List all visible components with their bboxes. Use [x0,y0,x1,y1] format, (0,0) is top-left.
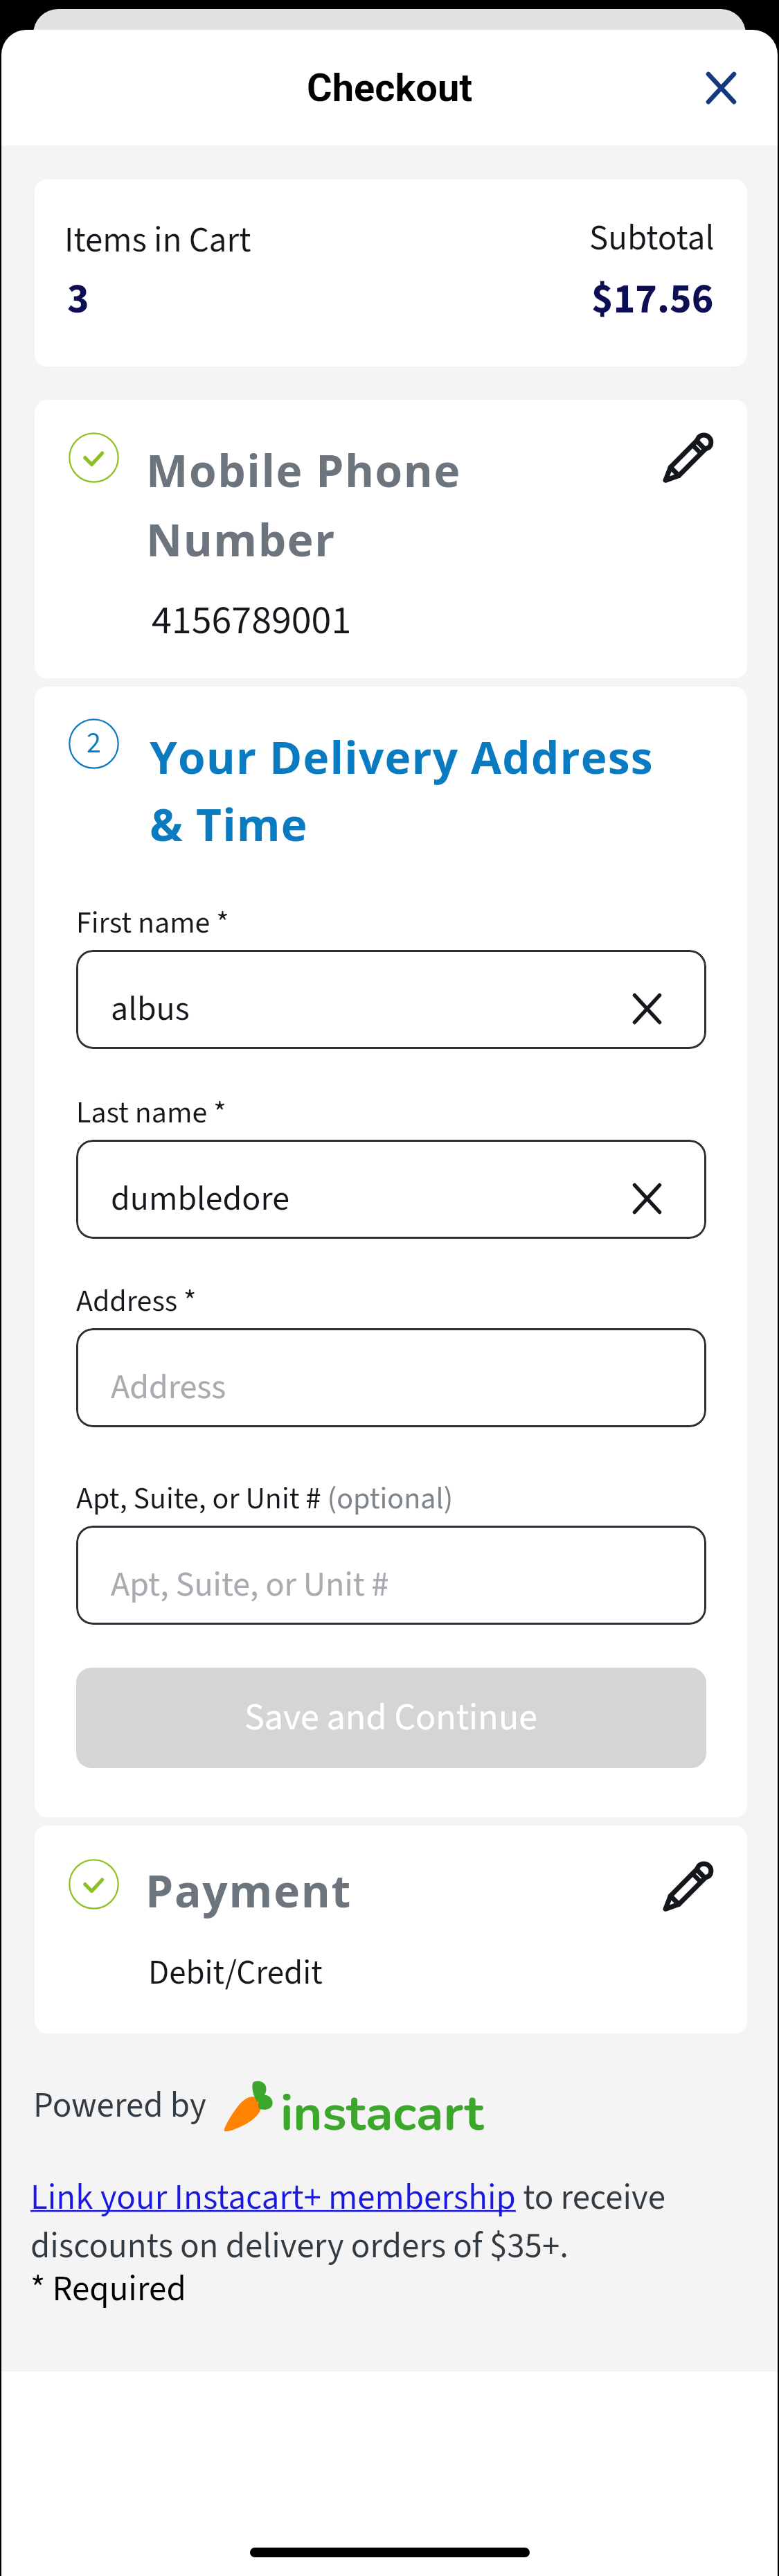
staticText: $17.56 [591,270,714,329]
staticText: Payment [145,1860,352,1921]
staticText: (optional) [321,1477,453,1521]
staticText: Apt, Suite, or Unit # [76,1477,321,1521]
staticText: albus [111,985,190,1034]
staticText: Items in Cart [64,215,251,266]
staticText: Save and Continue [244,1691,538,1745]
staticText: discounts on delivery orders of $35+. [30,2221,569,2272]
button[interactable]: Address [76,1328,706,1427]
button[interactable]: Close [683,50,759,126]
staticText: 4156789001 [152,592,352,650]
staticText: dumbledore [111,1174,290,1224]
staticText: Address [111,1363,226,1412]
staticText: Powered by [33,2081,206,2131]
staticText: Last name * [76,1091,226,1135]
staticText: 2 [87,723,101,764]
staticText: 3 [67,270,89,329]
staticText: Mobile Phone Number [146,440,461,569]
button[interactable]: Link your Instacart+ membership [30,2173,516,2223]
staticText: to receive [516,2173,666,2223]
staticText: Subtotal [589,213,715,264]
button[interactable]: Save and Continue [76,1668,706,1768]
button[interactable]: Apt, Suite, or Unit # [76,1526,706,1625]
staticText: Checkout [307,65,473,111]
button[interactable]: Edit [650,1848,726,1924]
staticText: * Required [30,2264,186,2315]
button[interactable]: dumbledore [76,1140,706,1239]
button[interactable]: Clear Last name * [620,1172,674,1226]
button[interactable]: albus [76,950,706,1049]
button[interactable]: Clear First name * [620,982,674,1036]
staticText: Address * [76,1280,197,1323]
staticText: Apt, Suite, or Unit # [111,1560,389,1609]
staticText: First name * [76,901,229,945]
button[interactable]: Edit [650,419,726,495]
staticText: instacart [280,2079,484,2147]
staticText: Debit/Credit [148,1949,323,1997]
staticText: Your Delivery Address & Time [150,727,654,854]
